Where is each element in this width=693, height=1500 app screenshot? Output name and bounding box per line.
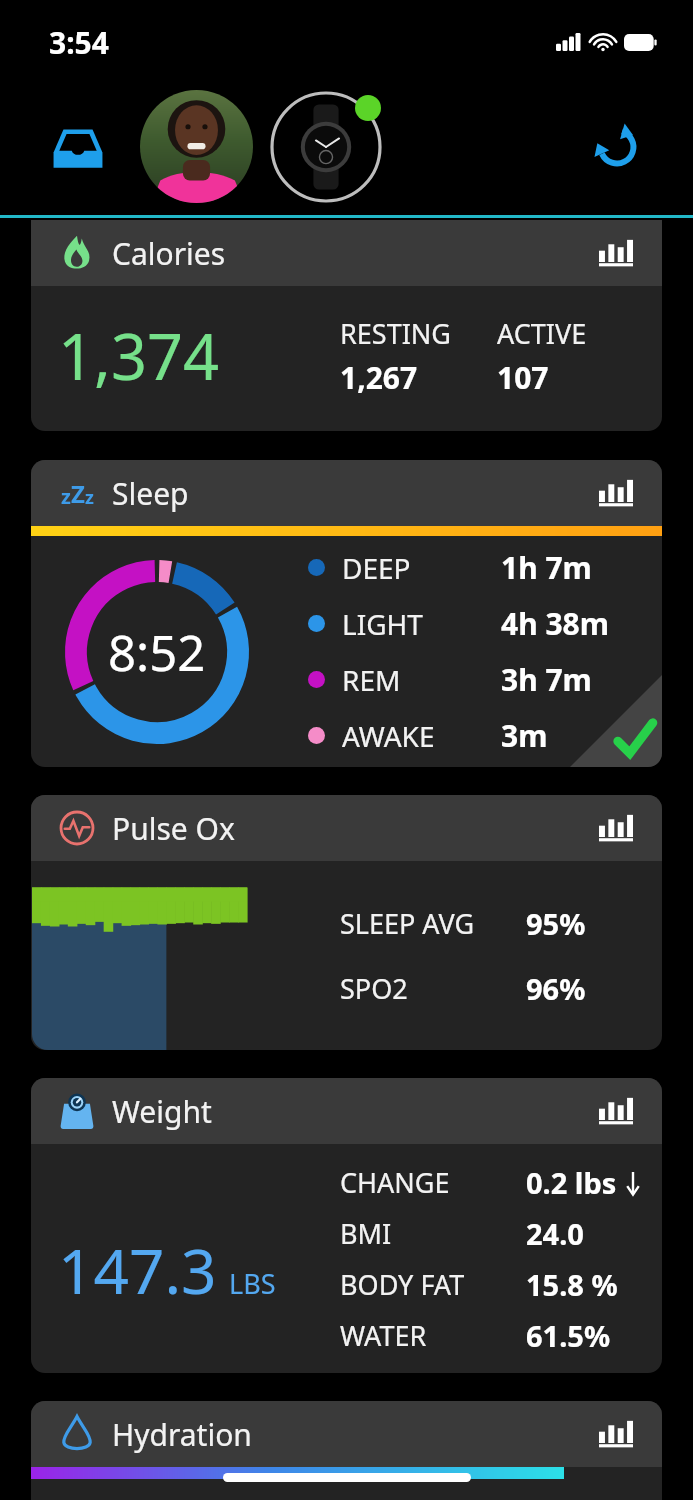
staticText: RESTING — [340, 315, 451, 352]
staticText: SLEEP AVG — [340, 905, 526, 942]
staticText: 1h 7m — [501, 547, 592, 588]
staticText: 0.2 lbs — [526, 1163, 617, 1202]
staticText: z — [85, 485, 94, 510]
staticText: Pulse Ox — [112, 808, 235, 849]
staticText: 95% — [526, 904, 586, 943]
staticText: 3m — [501, 715, 548, 756]
staticText: 107 — [497, 357, 549, 398]
button[interactable]: Pulse Ox — [31, 795, 662, 861]
staticText: 96% — [526, 969, 586, 1008]
button[interactable]: Hydration — [31, 1401, 662, 1500]
staticText: REM — [342, 661, 501, 699]
button[interactable]: Calories — [31, 220, 662, 286]
staticText: 1,374 — [58, 313, 220, 399]
staticText: 24.0 — [526, 1214, 584, 1253]
staticText: 3:54 — [49, 22, 109, 63]
button[interactable]: Pulse Ox — [31, 795, 662, 1050]
button[interactable]: View Weight chart — [592, 1087, 640, 1135]
button[interactable]: Profile — [140, 90, 253, 203]
staticText: 8:52 — [108, 619, 206, 686]
staticText: Hydration — [112, 1414, 252, 1455]
button[interactable]: z — [31, 460, 662, 526]
staticText: BODY FAT — [340, 1266, 526, 1303]
button[interactable]: Weight — [31, 1078, 662, 1373]
staticText: BMI — [340, 1215, 526, 1252]
staticText: 15.8 % — [526, 1265, 618, 1304]
staticText: LBS — [229, 1265, 276, 1302]
button[interactable]: Device — [265, 86, 387, 208]
staticText: SPO2 — [340, 970, 526, 1007]
staticText: Weight — [112, 1091, 212, 1132]
button[interactable]: Inbox — [28, 97, 128, 197]
button[interactable]: Hydration — [31, 1401, 662, 1467]
button[interactable]: Sync — [569, 99, 665, 195]
staticText: WATER — [340, 1317, 526, 1354]
staticText: Sleep — [112, 473, 189, 514]
staticText: 61.5% — [526, 1316, 611, 1355]
staticText: DEEP — [342, 549, 501, 587]
button[interactable]: View Pulse Ox chart — [592, 804, 640, 852]
staticText: 4h 38m — [501, 603, 610, 644]
button[interactable]: View Calories chart — [592, 229, 640, 277]
button[interactable]: z — [31, 460, 662, 767]
staticText: LIGHT — [342, 605, 501, 643]
staticText: 3h 7m — [501, 659, 592, 700]
staticText: CHANGE — [340, 1164, 526, 1201]
staticText: Calories — [112, 233, 226, 274]
staticText: ACTIVE — [497, 315, 587, 352]
button[interactable]: Weight — [31, 1078, 662, 1144]
button[interactable]: View Sleep chart — [592, 469, 640, 517]
button[interactable]: View Hydration chart — [592, 1410, 640, 1458]
staticText: z — [61, 483, 71, 510]
staticText: 147.3 — [58, 1228, 217, 1312]
staticText: 1,267 — [340, 357, 418, 398]
button[interactable]: Calories — [31, 220, 662, 431]
staticText: Z — [71, 477, 85, 510]
staticText: AWAKE — [342, 717, 501, 755]
